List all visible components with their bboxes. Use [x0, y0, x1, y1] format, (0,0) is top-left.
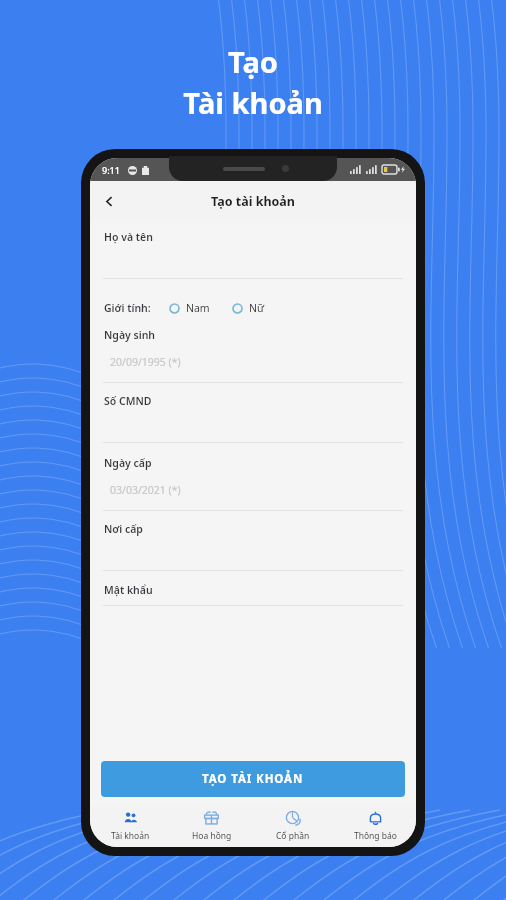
staticText: 20/09/1995 (*) [110, 355, 181, 369]
button[interactable]: Cổ phần [252, 805, 334, 847]
button[interactable]: TẠO TÀI KHOẢN [101, 761, 405, 797]
button[interactable]: Nam [169, 301, 210, 315]
staticText: Mật khẩu [104, 583, 153, 597]
staticText: Tài khoản [111, 830, 150, 842]
button[interactable]: Thông báo [334, 805, 416, 847]
staticText: Họ và tên [104, 230, 153, 244]
staticText: Ngày cấp [104, 456, 152, 470]
button[interactable]: Nữ [232, 301, 265, 315]
staticText: Tạo [228, 42, 278, 81]
staticText: 03/03/2021 (*) [110, 483, 181, 497]
staticText: Cổ phần [276, 830, 310, 842]
staticText: TẠO TÀI KHOẢN [202, 771, 304, 787]
staticText: Hoa hồng [192, 830, 232, 842]
button[interactable]: Back [90, 182, 128, 220]
button[interactable]: Tài khoản [90, 805, 171, 847]
staticText: 9:11 [102, 164, 120, 176]
staticText: Tạo tài khoản [211, 193, 295, 210]
staticText: Giới tính: [104, 301, 151, 315]
button[interactable]: Hoa hồng [171, 805, 252, 847]
staticText: Số CMND [104, 394, 152, 408]
staticText: Thông báo [354, 830, 397, 842]
staticText: Nơi cấp [104, 522, 143, 536]
staticText: Ngày sinh [104, 328, 156, 342]
staticText: Nam [186, 301, 210, 315]
staticText: Nữ [249, 301, 265, 315]
staticText: Tài khoản [183, 83, 323, 122]
